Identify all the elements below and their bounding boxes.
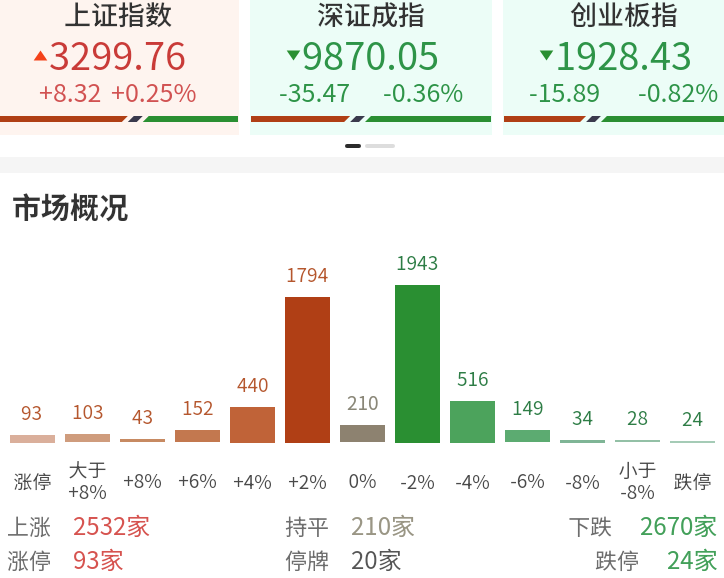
staticText: 28 [627,403,649,431]
button[interactable]: 创业板指 [503,0,724,135]
staticText: -4% [455,467,490,495]
staticText: -15.89 [529,73,601,109]
staticText: 1928.43 [555,26,693,81]
staticText: -6% [510,466,545,494]
staticText: -0.36% [383,73,464,109]
staticText: 210家 [351,507,415,542]
staticText: +6% [178,466,217,494]
staticText: +2% [288,467,327,495]
staticText: 516 [457,364,489,392]
staticText: 跌停 [595,543,640,575]
staticText: 创业板指 [570,0,678,33]
staticText: 43 [132,402,154,430]
staticText: +0.25% [111,73,197,109]
staticText: 大于 +8% [68,455,107,504]
button[interactable]: 深证成指 [250,0,492,135]
staticText: 涨停 [13,467,52,495]
staticText: +8.32 [39,73,102,109]
staticText: 24家 [667,541,718,576]
staticText: -0.82% [638,73,719,109]
staticText: 涨停 [7,543,52,575]
button[interactable]: 持平 [285,507,415,542]
staticText: 210 [347,388,379,416]
staticText: 1794 [286,260,329,288]
staticText: -8% [565,467,600,495]
button[interactable]: 下跌 [568,507,718,542]
staticText: 24 [682,404,704,432]
staticText: 9870.05 [302,26,440,81]
staticText: +8% [123,466,162,494]
staticText: 0% [348,466,377,494]
staticText: 440 [237,370,269,398]
staticText: 34 [572,403,594,431]
staticText: 1943 [396,248,439,276]
button[interactable]: 上涨 [7,507,151,542]
staticText: 93 [21,398,43,426]
button[interactable]: 停牌 [285,541,402,576]
staticText: 20家 [351,541,402,576]
staticText: 上涨 [7,509,52,541]
staticText: 跌停 [673,467,712,495]
staticText: 停牌 [285,543,330,575]
staticText: 152 [182,393,214,421]
button[interactable]: 跌停 [595,541,718,576]
staticText: +4% [233,467,272,495]
staticText: 深证成指 [317,0,425,33]
button[interactable]: Page 1 [345,144,361,148]
staticText: 93家 [73,541,124,576]
staticText: 持平 [285,509,330,541]
button[interactable]: Page 2 [365,144,395,148]
staticText: 下跌 [568,509,613,541]
staticText: 2532家 [73,507,151,542]
staticText: -35.47 [279,73,351,109]
staticText: 149 [512,393,544,421]
staticText: 市场概况 [12,184,129,226]
staticText: 小于 -8% [618,455,657,504]
staticText: 103 [72,397,104,425]
staticText: -2% [400,467,435,495]
button[interactable]: 上证指数 [0,0,239,135]
button[interactable]: 涨停 [7,541,124,576]
staticText: 3299.76 [49,26,187,81]
staticText: 2670家 [640,507,718,542]
staticText: 上证指数 [64,0,172,33]
